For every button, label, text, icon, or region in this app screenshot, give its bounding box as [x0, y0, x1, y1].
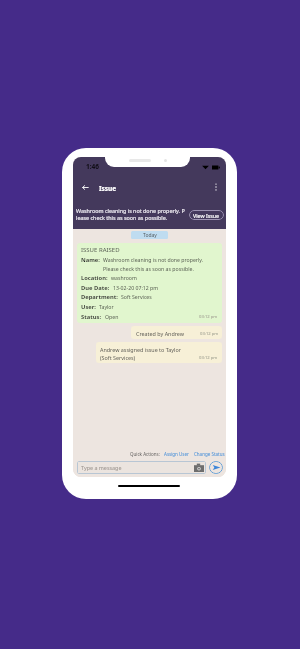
button[interactable]: More options [207, 178, 225, 196]
button[interactable]: Send [209, 461, 223, 474]
staticText: Name: [81, 256, 100, 264]
button[interactable]: Back [76, 178, 94, 196]
button[interactable]: Attach photo [194, 463, 204, 473]
staticText: washroom [111, 274, 137, 281]
staticText: Due Date: [81, 284, 110, 292]
button[interactable]: ISSUE RAISED [77, 243, 222, 323]
staticText: Status: [81, 313, 102, 321]
staticText: Taylor [99, 303, 114, 310]
staticText: (Soft Services) [100, 354, 136, 361]
staticText: Issue [99, 184, 117, 193]
staticText: lease check this as soon as possible. [76, 214, 168, 221]
staticText: Open [105, 313, 119, 320]
staticText: 13-02-20 07:12 pm [113, 284, 159, 291]
staticText: Change Status [194, 451, 225, 457]
staticText: User: [81, 303, 96, 311]
staticText: Today [143, 232, 157, 239]
staticText: 1:46 [86, 162, 99, 171]
button[interactable]: Created by Andrew [131, 326, 222, 339]
staticText: Type a message [81, 464, 122, 471]
staticText: Assign User [164, 451, 189, 457]
staticText: Created by Andrew [136, 330, 185, 337]
staticText: Washroom cleaning is not done properly. … [103, 256, 218, 273]
staticText: ISSUE RAISED [81, 246, 120, 254]
button[interactable]: Change Status [194, 451, 225, 457]
button[interactable]: View Issue [189, 210, 224, 220]
button[interactable]: Type a message [77, 461, 206, 474]
button[interactable]: Andrew assigned issue to Taylor [96, 342, 222, 363]
staticText: Soft Services [121, 293, 152, 300]
button[interactable]: Today [131, 231, 168, 239]
staticText: Quick Actions: [130, 451, 160, 457]
staticText: Location: [81, 274, 108, 282]
button[interactable]: Assign User [164, 451, 189, 457]
staticText: 03:12 pm [199, 355, 218, 361]
staticText: 03:12 pm [200, 331, 219, 337]
staticText: Department: [81, 293, 118, 301]
staticText: Andrew assigned issue to Taylor [100, 346, 181, 353]
staticText: Washroom cleaning is not done properly. … [76, 207, 185, 214]
staticText: 03:12 pm [199, 314, 218, 320]
staticText: View Issue [193, 212, 220, 219]
